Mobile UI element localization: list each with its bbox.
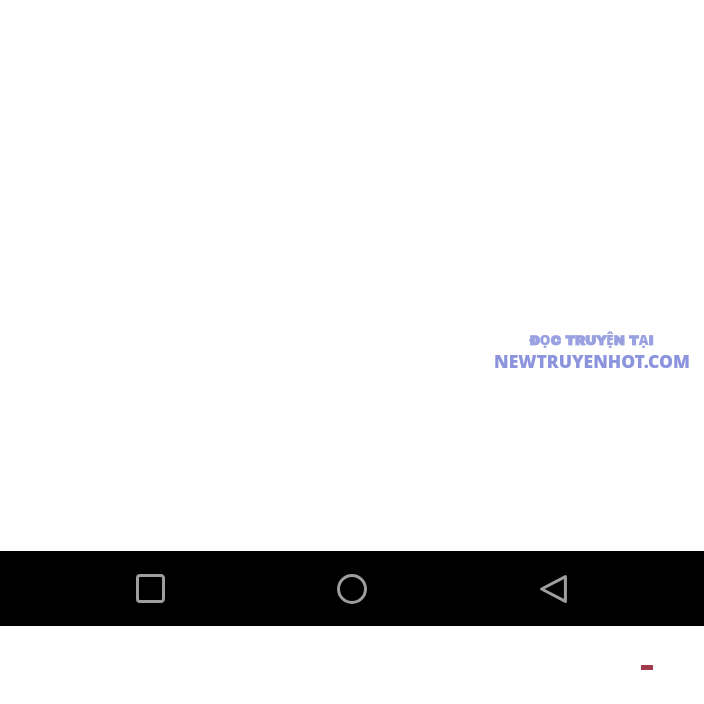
staticText: NEWTRUYENHOT.COM	[494, 349, 690, 373]
staticText: ĐỌC TRUYỆN TẠI	[529, 331, 654, 349]
button[interactable]: Home	[311, 551, 393, 626]
button[interactable]: Recent apps	[110, 551, 191, 626]
button[interactable]: Back	[512, 551, 594, 626]
